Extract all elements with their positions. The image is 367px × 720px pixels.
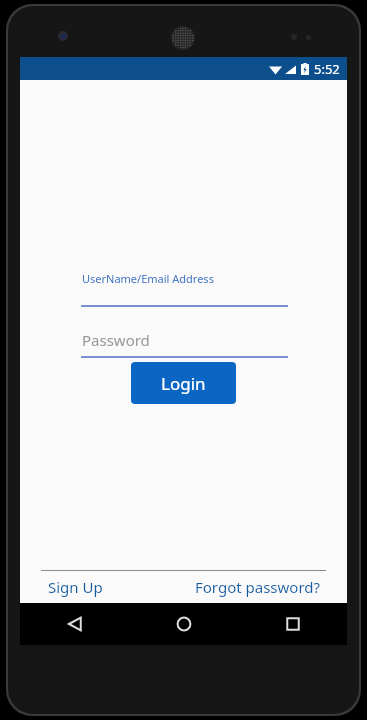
staticText: 5:52: [314, 60, 340, 78]
button[interactable]: Password: [81, 330, 288, 358]
button[interactable]: Home: [129, 603, 238, 645]
staticText: Forgot password?: [195, 577, 321, 597]
button[interactable]: Back: [20, 603, 129, 645]
button[interactable]: Forgot password?: [183, 573, 333, 601]
button[interactable]: Login: [131, 362, 236, 404]
staticText: Sign Up: [48, 577, 103, 597]
staticText: Password: [82, 330, 150, 350]
staticText: Login: [161, 372, 206, 395]
button[interactable]: Recent apps: [238, 603, 347, 645]
staticText: UserName/Email Address: [82, 271, 214, 286]
button[interactable]: Sign Up: [34, 573, 117, 601]
button[interactable]: UserName/Email Address: [81, 271, 288, 307]
